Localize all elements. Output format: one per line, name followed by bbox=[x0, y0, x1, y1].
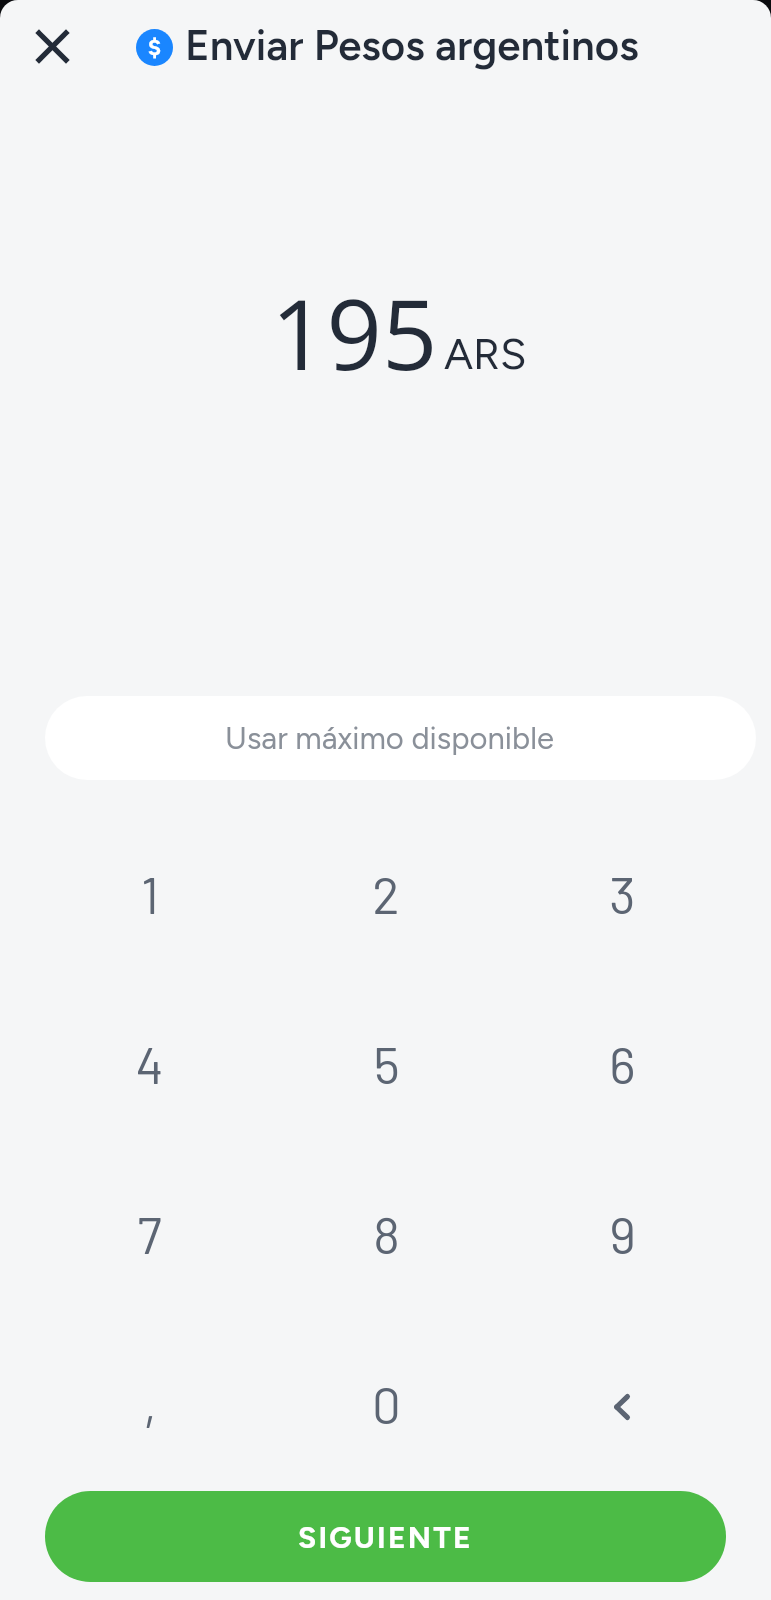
staticText: 2 bbox=[372, 863, 400, 924]
staticText: ARS bbox=[444, 328, 527, 380]
staticText: 7 bbox=[137, 1203, 162, 1264]
staticText: Usar máximo disponible bbox=[225, 720, 554, 757]
staticText: 5 bbox=[373, 1033, 400, 1094]
staticText: 1 bbox=[141, 863, 159, 924]
button[interactable]: 8 bbox=[268, 1148, 504, 1318]
button[interactable]: Borrar bbox=[504, 1318, 740, 1488]
staticText: 0 bbox=[372, 1373, 401, 1434]
staticText: Enviar Pesos argentinos bbox=[185, 20, 639, 70]
button[interactable]: , bbox=[31, 1318, 268, 1488]
button[interactable]: 3 bbox=[504, 808, 740, 978]
button[interactable]: Cerrar bbox=[15, 9, 90, 84]
staticText: 6 bbox=[609, 1033, 636, 1094]
button[interactable]: 4 bbox=[31, 978, 268, 1148]
staticText: $ bbox=[148, 33, 162, 62]
staticText: SIGUIENTE bbox=[298, 1519, 473, 1555]
button[interactable]: 7 bbox=[31, 1148, 268, 1318]
button[interactable]: 0 bbox=[268, 1318, 504, 1488]
staticText: , bbox=[143, 1373, 157, 1434]
staticText: 9 bbox=[609, 1203, 636, 1264]
button[interactable]: 6 bbox=[504, 978, 740, 1148]
staticText: 195 bbox=[271, 266, 438, 398]
button[interactable]: 5 bbox=[268, 978, 504, 1148]
staticText: 4 bbox=[135, 1033, 164, 1094]
button[interactable]: SIGUIENTE bbox=[45, 1491, 726, 1582]
button[interactable]: 9 bbox=[504, 1148, 740, 1318]
staticText: 3 bbox=[609, 863, 636, 924]
button[interactable]: 2 bbox=[268, 808, 504, 978]
staticText: 8 bbox=[373, 1203, 400, 1264]
button[interactable]: 1 bbox=[31, 808, 268, 978]
button[interactable]: Usar máximo disponible bbox=[45, 696, 756, 780]
